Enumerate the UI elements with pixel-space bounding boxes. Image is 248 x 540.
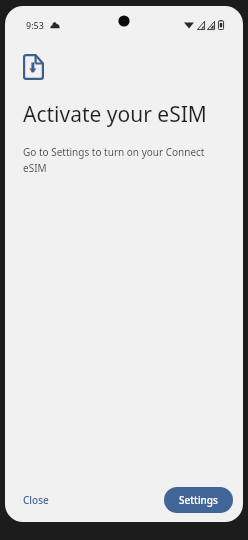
staticText: 9:53 xyxy=(26,19,44,31)
staticText: Go to Settings to turn on your Connect e… xyxy=(23,145,225,174)
staticText: Activate your eSIM xyxy=(23,100,207,129)
button[interactable]: Close xyxy=(15,487,57,513)
staticText: Settings xyxy=(179,493,218,507)
button[interactable]: Settings xyxy=(164,487,233,513)
staticText: Close xyxy=(23,493,49,507)
